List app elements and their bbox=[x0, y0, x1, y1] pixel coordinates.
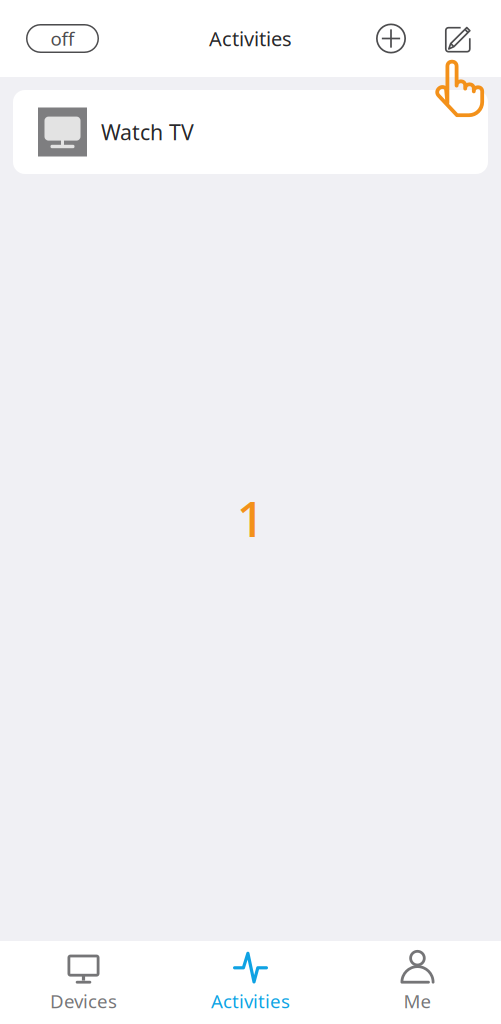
button[interactable]: Activities bbox=[167, 949, 334, 1013]
staticText: Me bbox=[403, 989, 431, 1013]
staticText: Devices bbox=[50, 989, 117, 1013]
staticText: Activities bbox=[209, 25, 292, 52]
button[interactable]: Devices bbox=[0, 949, 167, 1013]
staticText: off bbox=[50, 26, 74, 51]
button[interactable]: Add activity bbox=[369, 12, 413, 64]
staticText: 1 bbox=[236, 485, 264, 550]
button[interactable]: Me bbox=[334, 949, 501, 1013]
staticText: Activities bbox=[211, 989, 290, 1013]
button[interactable]: Watch TV bbox=[13, 90, 488, 174]
button[interactable]: Edit activities bbox=[437, 12, 481, 64]
button[interactable]: off bbox=[26, 24, 99, 53]
staticText: Watch TV bbox=[101, 118, 194, 146]
